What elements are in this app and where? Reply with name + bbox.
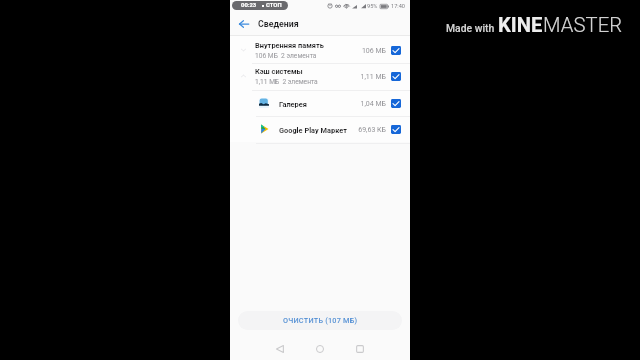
staticText: Сведения — [258, 19, 299, 29]
staticText: Google Play Маркет — [279, 126, 347, 135]
staticText: 1,11 МБ — [360, 73, 386, 81]
button[interactable]: Selected — [391, 99, 401, 108]
staticText: 95% — [367, 3, 378, 10]
staticText: MASTER — [543, 13, 623, 37]
button[interactable]: Кэш системы — [230, 63, 410, 90]
staticText: 1,04 МБ — [360, 100, 386, 108]
button[interactable]: Selected — [391, 46, 401, 55]
staticText: 106 МБ 2 элемента — [255, 52, 317, 60]
button[interactable]: Back — [270, 342, 290, 356]
staticText: 106 МБ — [361, 47, 386, 55]
staticText: Внутренняя память — [255, 41, 324, 50]
button[interactable]: ОЧИСТИТЬ (107 МБ) — [238, 311, 402, 330]
button[interactable]: Recent apps — [350, 342, 370, 356]
staticText: Галерея — [279, 100, 307, 109]
staticText: 17:40 — [391, 3, 405, 10]
button[interactable]: Stop recording — [232, 1, 288, 10]
staticText: 1,11 МБ 2 элемента — [255, 78, 318, 86]
button[interactable]: Home — [310, 342, 330, 356]
button[interactable]: Selected — [391, 72, 401, 81]
staticText: Кэш системы — [255, 67, 303, 76]
button[interactable]: Selected — [391, 125, 401, 134]
button[interactable]: Back — [234, 14, 254, 34]
staticText: СТОП — [266, 2, 282, 9]
button[interactable]: Google Play Маркет — [230, 116, 410, 143]
staticText: 69,63 КБ — [358, 126, 386, 134]
staticText: KINE — [498, 13, 543, 37]
staticText: Made with — [446, 22, 495, 34]
staticText: 00:23 — [241, 2, 257, 9]
staticText: ОЧИСТИТЬ (107 МБ) — [283, 316, 358, 325]
button[interactable]: Внутренняя память — [230, 37, 410, 64]
button[interactable]: Галерея — [230, 90, 410, 117]
